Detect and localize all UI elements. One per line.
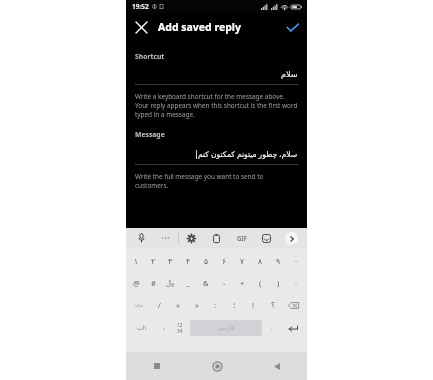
button[interactable]: ۳	[162, 250, 179, 272]
staticText: #	[151, 278, 156, 288]
button[interactable]: Clipboard	[204, 228, 229, 248]
button[interactable]: ۷	[233, 250, 251, 272]
button[interactable]: Recents	[126, 352, 187, 380]
staticText: !	[252, 300, 255, 310]
staticText: ۷	[240, 257, 245, 266]
button[interactable]: ۱	[128, 250, 145, 272]
staticText: فارسی	[218, 325, 235, 332]
staticText: 19:52	[132, 2, 149, 11]
button[interactable]: Settings	[179, 228, 204, 248]
staticText: سلام	[281, 70, 298, 79]
button[interactable]: ؟	[263, 294, 282, 316]
button[interactable]: Enter	[280, 317, 305, 339]
button[interactable]: ۲	[145, 250, 162, 272]
staticText: ۹	[276, 257, 281, 266]
button[interactable]: ۹	[269, 250, 287, 272]
button[interactable]: ۴	[179, 250, 197, 272]
button[interactable]: »	[187, 294, 206, 316]
button[interactable]: /	[150, 294, 168, 316]
button[interactable]: ۶	[215, 250, 233, 272]
staticText: ۰	[294, 257, 299, 266]
button[interactable]: _	[179, 272, 197, 294]
button[interactable]: ؛	[225, 294, 244, 316]
button[interactable]: ۰	[287, 250, 305, 272]
staticText: &	[203, 278, 209, 288]
staticText: اب\	[137, 324, 147, 332]
staticText: سلام، چطور میتونم کمکتون کنم	[198, 149, 298, 159]
button[interactable]: +	[233, 272, 251, 294]
button[interactable]: More	[153, 228, 178, 248]
staticText: =\<	[135, 302, 143, 309]
button[interactable]: Stickers	[254, 228, 279, 248]
staticText: ۴	[186, 257, 191, 266]
staticText: Write a keyboard shortcut for the messag…	[135, 92, 298, 119]
button[interactable]: Save	[282, 17, 302, 37]
button[interactable]: #	[145, 272, 162, 294]
button[interactable]: 12	[172, 317, 188, 339]
button[interactable]: اب\	[128, 317, 156, 339]
staticText: _	[186, 278, 190, 288]
button[interactable]: ﷼	[162, 272, 179, 294]
button[interactable]: ،	[156, 317, 172, 339]
button[interactable]: :	[206, 294, 225, 316]
button[interactable]: &	[197, 272, 215, 294]
staticText: ۱	[134, 257, 139, 266]
button[interactable]: سلام	[135, 70, 298, 79]
button[interactable]: فارسی	[190, 320, 262, 336]
staticText: ·	[295, 278, 298, 288]
staticText: ؛	[233, 301, 236, 310]
staticText: Write the full message you want to send …	[135, 172, 298, 190]
button[interactable]: ۵	[197, 250, 215, 272]
button[interactable]: (	[251, 272, 269, 294]
staticText: ۸	[258, 257, 263, 266]
staticText: .	[271, 323, 273, 333]
staticText: /	[158, 300, 161, 310]
staticText: ﷼	[166, 279, 175, 287]
button[interactable]: «	[168, 294, 187, 316]
staticText: Shortcut	[135, 52, 165, 61]
staticText: -	[223, 278, 226, 288]
staticText: ۲	[151, 257, 156, 266]
button[interactable]: GIF	[229, 228, 254, 248]
staticText: »	[195, 300, 199, 310]
button[interactable]: Expand toolbar	[279, 228, 304, 248]
staticText: 12	[177, 322, 183, 328]
staticText: GIF	[237, 234, 247, 242]
staticText: 34	[177, 328, 183, 334]
staticText: ۶	[222, 257, 227, 266]
staticText: «	[176, 300, 180, 310]
staticText: )	[277, 278, 280, 288]
button[interactable]: Home	[187, 352, 247, 380]
button[interactable]: -	[215, 272, 233, 294]
button[interactable]: Backspace	[282, 294, 305, 316]
button[interactable]: سلام، چطور میتونم کمکتون کنم	[135, 149, 298, 159]
staticText: ۵	[204, 257, 209, 266]
staticText: :	[214, 300, 217, 310]
button[interactable]: =\<	[128, 294, 150, 316]
button[interactable]: Close	[131, 17, 151, 37]
button[interactable]: !	[244, 294, 263, 316]
button[interactable]: ·	[287, 272, 305, 294]
button[interactable]: ۸	[251, 250, 269, 272]
staticText: ،	[163, 324, 166, 332]
staticText: Message	[135, 130, 165, 139]
staticText: ؟	[271, 301, 275, 310]
button[interactable]: @	[128, 272, 145, 294]
staticText: +	[240, 278, 245, 288]
staticText: Add saved reply	[158, 20, 241, 34]
button[interactable]: Back	[247, 352, 307, 380]
button[interactable]: Voice input	[129, 228, 153, 248]
staticText: ۳	[168, 257, 173, 266]
button[interactable]: )	[269, 272, 287, 294]
staticText: @	[133, 278, 140, 288]
staticText: (	[259, 278, 262, 288]
